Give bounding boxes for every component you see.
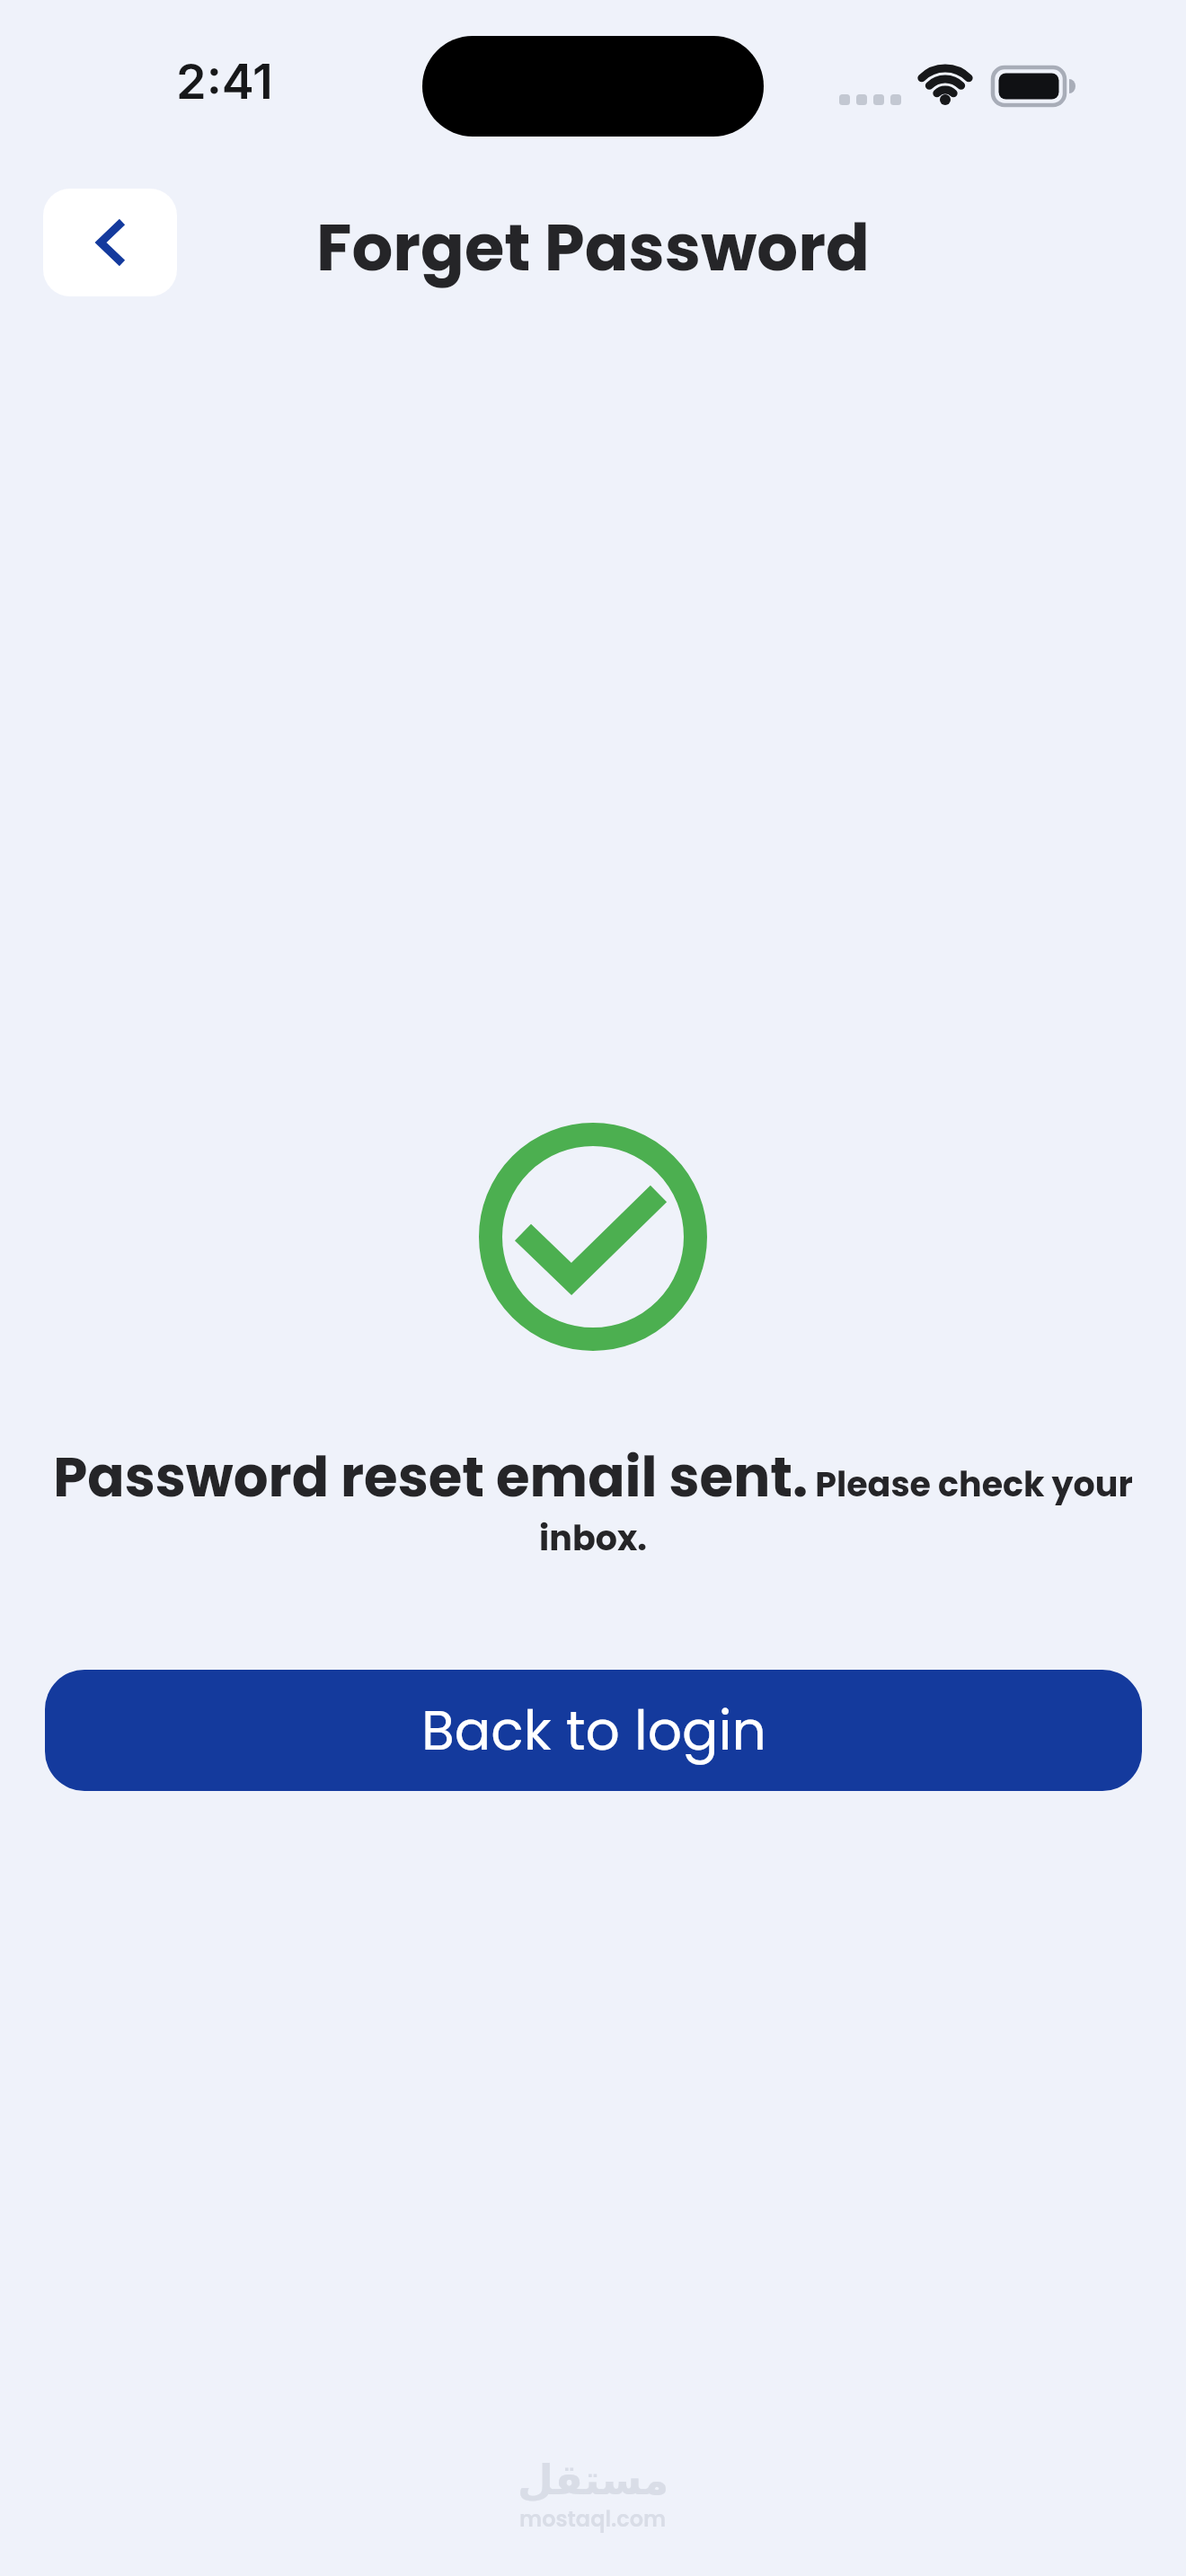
staticText: Back to login [421, 1693, 766, 1769]
staticText: مستقل [518, 2456, 669, 2504]
button[interactable] [43, 189, 177, 296]
button[interactable]: Back to login [45, 1670, 1142, 1791]
staticText: Forget Password [316, 202, 870, 293]
staticText: mostaql.com [519, 2504, 667, 2535]
staticText: Password reset email sent. Please check … [0, 1439, 1186, 1562]
staticText: 2:41 [176, 52, 273, 110]
